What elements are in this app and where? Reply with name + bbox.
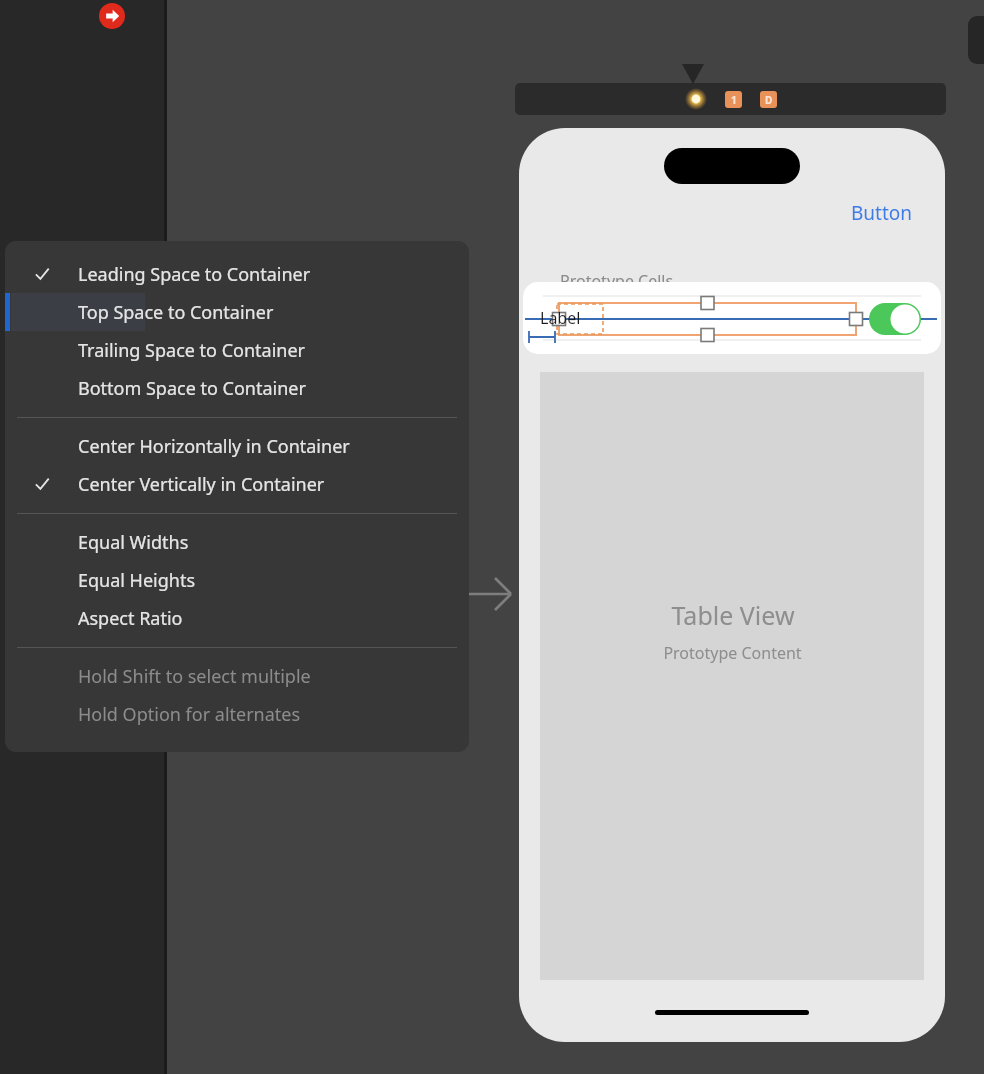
button[interactable]: Table View: [540, 372, 924, 980]
button[interactable]: Aspect Ratio: [5, 599, 469, 637]
staticText: Center Horizontally in Container: [78, 434, 350, 459]
button[interactable]: Hold Option for alternates: [5, 695, 469, 733]
button[interactable]: Leading Space to Container: [5, 255, 469, 293]
staticText: Prototype Content: [663, 642, 802, 664]
button[interactable]: Center Vertically in Container: [5, 465, 469, 503]
staticText: Equal Heights: [78, 568, 196, 593]
staticText: Hold Option for alternates: [78, 702, 301, 727]
button[interactable]: Label: [523, 282, 941, 354]
staticText: Prototype Cells: [560, 270, 674, 292]
staticText: Bottom Space to Container: [78, 376, 306, 401]
staticText: Label: [540, 307, 581, 329]
staticText: Table View: [671, 598, 795, 632]
button[interactable]: View Controller: [685, 88, 707, 110]
staticText: Button: [851, 200, 913, 226]
staticText: Aspect Ratio: [78, 606, 183, 631]
staticText: Trailing Space to Container: [78, 338, 306, 363]
staticText: Top Space to Container: [78, 300, 274, 325]
staticText: Equal Widths: [78, 530, 189, 555]
staticText: Center Vertically in Container: [78, 472, 325, 497]
button[interactable]: Equal Heights: [5, 561, 469, 599]
button[interactable]: Hold Shift to select multiple: [5, 657, 469, 695]
button[interactable]: Button: [849, 198, 915, 228]
staticText: D: [765, 93, 773, 107]
staticText: 1: [731, 93, 737, 107]
button[interactable]: View Controller: [968, 16, 984, 64]
staticText: Leading Space to Container: [78, 262, 311, 287]
button[interactable]: Top Space to Container: [5, 293, 469, 331]
staticText: Hold Shift to select multiple: [78, 664, 311, 689]
button[interactable]: D: [760, 91, 777, 108]
button[interactable]: Trailing Space to Container: [5, 331, 469, 369]
button[interactable]: 1: [725, 91, 742, 108]
button[interactable]: Equal Widths: [5, 523, 469, 561]
button[interactable]: Bottom Space to Container: [5, 369, 469, 407]
button[interactable]: Segue: [99, 3, 125, 29]
button[interactable]: Center Horizontally in Container: [5, 427, 469, 465]
